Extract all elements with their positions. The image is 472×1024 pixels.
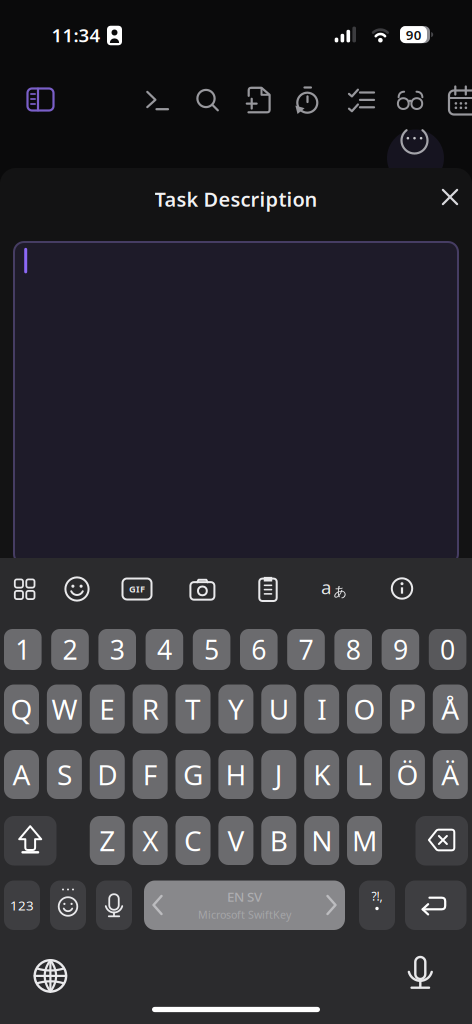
staticText: 2 xyxy=(62,632,77,667)
staticText: 8 xyxy=(346,632,361,667)
button[interactable]: 5 xyxy=(193,629,230,670)
button[interactable]: N xyxy=(304,816,339,865)
staticText: 6 xyxy=(251,632,266,667)
button[interactable]: Camera xyxy=(189,575,216,602)
button[interactable]: I xyxy=(304,684,339,733)
button[interactable]: 9 xyxy=(382,629,419,670)
staticText: 4 xyxy=(157,632,172,667)
button[interactable]: History xyxy=(290,83,326,119)
button[interactable]: Info xyxy=(388,575,415,602)
staticText: GIF xyxy=(129,583,145,595)
staticText: 0 xyxy=(440,632,455,667)
staticText: あ xyxy=(333,583,347,600)
button[interactable]: H xyxy=(218,750,253,799)
staticText: G xyxy=(183,756,203,793)
button[interactable]: 2 xyxy=(51,629,89,670)
staticText: 1 xyxy=(15,632,30,667)
staticText: Microsoft SwiftKey xyxy=(198,907,291,922)
button[interactable]: G xyxy=(175,750,210,799)
button[interactable]: M xyxy=(347,816,382,865)
staticText: H xyxy=(225,756,246,793)
staticText: 5 xyxy=(204,632,219,667)
staticText: L xyxy=(357,756,372,793)
button[interactable]: Switch keyboard xyxy=(33,959,67,993)
button[interactable]: E xyxy=(90,684,125,733)
button[interactable]: 1 xyxy=(4,629,42,670)
button[interactable]: Reader xyxy=(392,82,428,118)
button[interactable]: A xyxy=(4,750,39,799)
staticText: T xyxy=(185,690,201,728)
button[interactable]: Return xyxy=(405,880,466,930)
button[interactable]: 123 xyxy=(4,880,40,930)
button[interactable]: Ö xyxy=(390,750,425,799)
button[interactable]: Clipboard xyxy=(254,575,281,602)
staticText: 9 xyxy=(393,632,408,667)
staticText: Y xyxy=(228,690,244,728)
button[interactable]: Y xyxy=(218,684,253,733)
staticText: C xyxy=(184,822,202,859)
staticText: Å xyxy=(441,690,459,728)
button[interactable]: R xyxy=(133,684,168,733)
button[interactable]: GIF xyxy=(121,575,152,602)
staticText: Q xyxy=(10,690,32,728)
button[interactable]: T xyxy=(175,684,210,733)
staticText: Z xyxy=(99,822,115,859)
button[interactable]: Å xyxy=(433,684,468,733)
button[interactable]: 0 xyxy=(429,629,466,670)
staticText: ?!, xyxy=(371,888,382,904)
button[interactable]: D xyxy=(90,750,125,799)
staticText: O xyxy=(353,690,375,728)
staticText: 3 xyxy=(110,632,125,667)
staticText: X xyxy=(142,822,158,859)
button[interactable]: C xyxy=(175,816,210,865)
button[interactable]: Close xyxy=(438,185,462,209)
button[interactable]: K xyxy=(304,750,339,799)
button[interactable]: 4 xyxy=(146,629,183,670)
button[interactable]: 6 xyxy=(240,629,278,670)
button[interactable]: Space xyxy=(144,880,345,930)
button[interactable]: New task xyxy=(240,82,276,118)
button[interactable]: Shift xyxy=(4,816,56,865)
button[interactable]: 3 xyxy=(98,629,136,670)
button[interactable]: O xyxy=(347,684,382,733)
button[interactable]: Q xyxy=(4,684,39,733)
button[interactable]: Assistant xyxy=(385,126,445,188)
staticText: 123 xyxy=(10,896,34,914)
button[interactable]: J xyxy=(261,750,296,799)
button[interactable]: Apps xyxy=(11,575,38,602)
button[interactable]: 7 xyxy=(287,629,325,670)
button[interactable]: Checklist xyxy=(340,84,380,116)
button[interactable]: B xyxy=(261,816,296,865)
button[interactable]: W xyxy=(47,684,82,733)
button[interactable]: Punctuation xyxy=(359,880,395,930)
button[interactable]: Emoji xyxy=(63,575,90,602)
button[interactable]: Terminal xyxy=(141,84,175,116)
button[interactable]: 8 xyxy=(334,629,372,670)
staticText: E xyxy=(99,690,115,728)
button[interactable]: Search xyxy=(191,84,225,116)
staticText: F xyxy=(143,756,158,793)
button[interactable]: Calendar xyxy=(445,82,472,118)
staticText: U xyxy=(269,690,289,728)
button[interactable]: Emoji xyxy=(50,880,86,930)
button[interactable]: Translate xyxy=(318,575,354,602)
staticText: 7 xyxy=(298,632,313,667)
button[interactable]: Sidebar xyxy=(20,83,60,115)
button[interactable]: U xyxy=(261,684,296,733)
button[interactable]: Ä xyxy=(433,750,468,799)
button[interactable]: Z xyxy=(90,816,125,865)
button[interactable]: P xyxy=(390,684,425,733)
staticText: V xyxy=(227,822,244,859)
button[interactable]: V xyxy=(218,816,253,865)
staticText: a xyxy=(321,575,331,599)
staticText: W xyxy=(51,690,77,728)
staticText: K xyxy=(313,756,330,793)
button[interactable]: Delete xyxy=(415,816,468,865)
button[interactable]: X xyxy=(133,816,168,865)
staticText: A xyxy=(12,756,30,793)
button[interactable]: L xyxy=(347,750,382,799)
button[interactable]: F xyxy=(133,750,168,799)
button[interactable]: Voice typing xyxy=(96,880,132,930)
button[interactable]: S xyxy=(47,750,82,799)
button[interactable]: Dictate xyxy=(403,955,437,991)
